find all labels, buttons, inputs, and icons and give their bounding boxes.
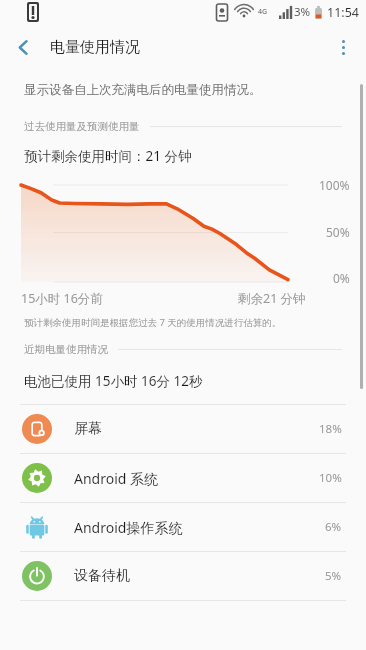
staticText: 屏幕: [74, 420, 319, 438]
button[interactable]: Android操作系统: [0, 503, 366, 551]
staticText: Android 系统: [74, 469, 319, 488]
button[interactable]: Back: [0, 24, 46, 70]
staticText: 10%: [319, 470, 342, 486]
staticText: 50%: [326, 224, 350, 240]
staticText: 100%: [319, 177, 350, 193]
staticText: 0%: [333, 270, 350, 286]
staticText: 4G: [258, 7, 268, 17]
staticText: 15小时 16分前: [21, 290, 103, 307]
staticText: 6%: [325, 519, 342, 535]
button[interactable]: Android 系统: [0, 454, 366, 502]
staticText: 18%: [319, 421, 342, 437]
staticText: 预计剩余使用时间：21 分钟: [24, 147, 192, 165]
staticText: 显示设备自上次充满电后的电量使用情况。: [24, 82, 262, 98]
button[interactable]: 屏幕: [0, 405, 366, 453]
staticText: 11:54: [327, 4, 359, 21]
staticText: 过去使用量及预测使用量: [24, 120, 140, 133]
button[interactable]: 设备待机: [0, 552, 366, 600]
staticText: 电量使用情况: [50, 38, 140, 57]
staticText: 预计剩余使用时间是根据您过去 7 天的使用情况进行估算的。: [24, 316, 282, 329]
staticText: Android操作系统: [74, 518, 325, 537]
staticText: 近期电量使用情况: [24, 343, 108, 356]
staticText: 3%: [294, 4, 311, 20]
staticText: 剩余21 分钟: [238, 290, 306, 307]
staticText: 电池已使用 15小时 16分 12秒: [24, 372, 203, 390]
button[interactable]: More options: [320, 24, 366, 70]
staticText: 设备待机: [74, 567, 325, 585]
staticText: 5%: [325, 568, 342, 584]
